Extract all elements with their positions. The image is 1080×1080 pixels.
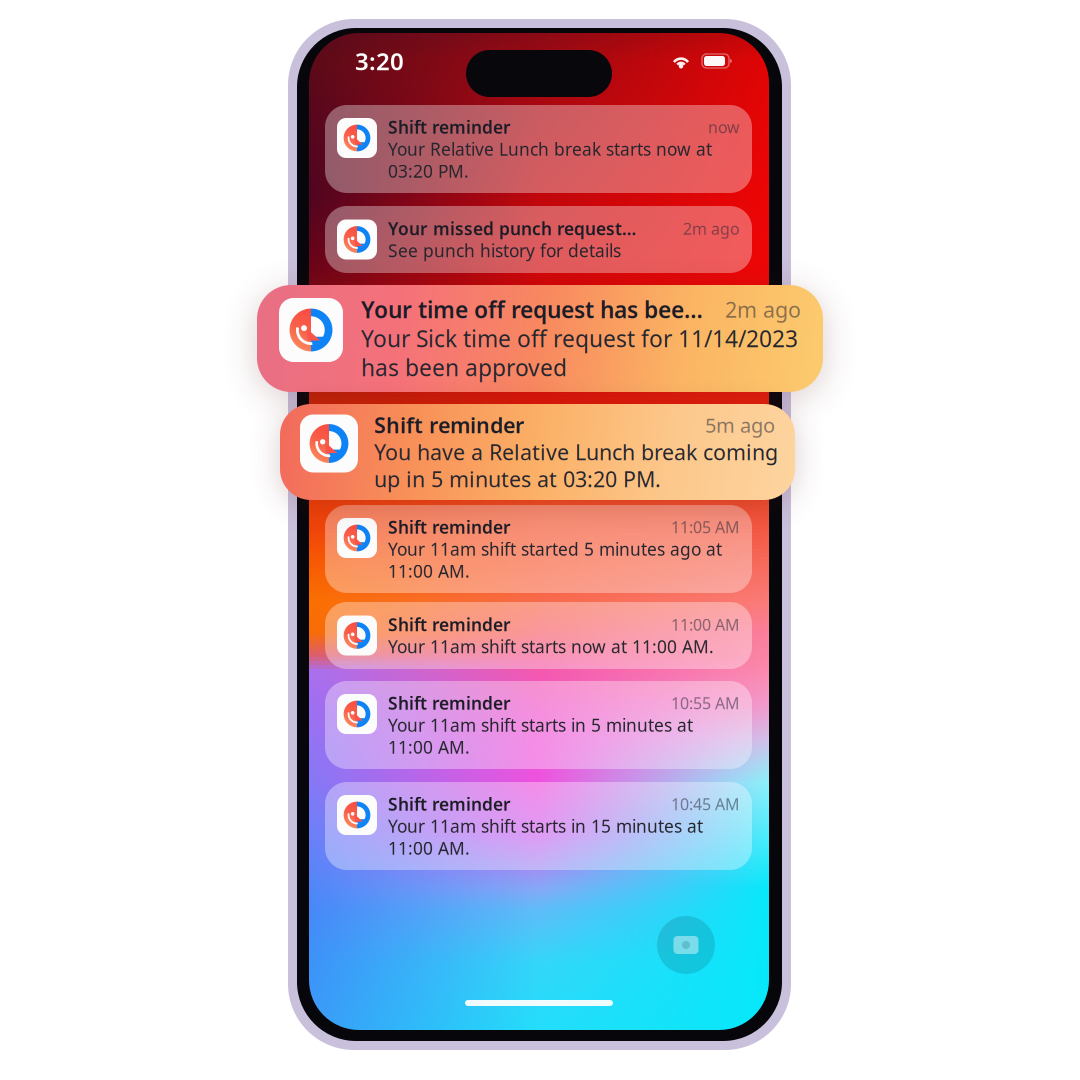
staticText: 03:20 PM. [388,159,469,182]
staticText: Your Sick time off request for 11/14/202… [361,323,798,353]
staticText: Your time off request has bee… [361,294,703,324]
staticText: See punch history for details [388,239,621,262]
staticText: You have a Relative Lunch break coming [374,438,778,466]
staticText: Your 11am shift starts now at 11:00 AM. [388,635,714,658]
staticText: 11:00 AM [671,614,740,635]
staticText: 5m ago [705,412,775,438]
staticText: 11:00 AM. [388,559,470,582]
staticText: Shift reminder [388,115,511,138]
staticText: up in 5 minutes at 03:20 PM. [374,465,661,493]
staticText: Shift reminder [388,792,511,815]
staticText: Your missed punch request… [388,217,636,240]
staticText: Your Relative Lunch break starts now at [388,137,712,160]
button[interactable]: Shift reminder [325,681,752,769]
staticText: Shift reminder [388,515,511,538]
staticText: Your 11am shift starts in 5 minutes at [388,713,693,736]
staticText: now [708,116,740,138]
button[interactable]: Shift reminder [280,404,795,500]
staticText: 2m ago [683,218,740,239]
button[interactable]: Shift reminder [325,602,752,669]
staticText: 11:00 AM. [388,836,470,859]
staticText: Shift reminder [388,613,511,636]
staticText: 11:00 AM. [388,735,470,758]
staticText: 10:45 AM [671,793,740,815]
staticText: 10:55 AM [671,692,740,714]
staticText: has been approved [361,352,567,382]
staticText: Your 11am shift starts in 15 minutes at [388,814,703,837]
button[interactable]: Shift reminder [325,105,752,193]
button[interactable]: Shift reminder [325,782,752,870]
staticText: 11:05 AM [671,516,740,538]
staticText: Shift reminder [374,411,524,439]
staticText: 2m ago [725,295,801,324]
staticText: 3:20 [355,45,404,77]
button[interactable]: Camera [657,916,715,974]
staticText: Shift reminder [388,691,511,714]
button[interactable]: Your missed punch request… [325,206,752,273]
button[interactable]: Your time off request has bee… [257,285,823,392]
staticText: Your 11am shift started 5 minutes ago at [388,537,722,560]
button[interactable]: Shift reminder [325,505,752,593]
